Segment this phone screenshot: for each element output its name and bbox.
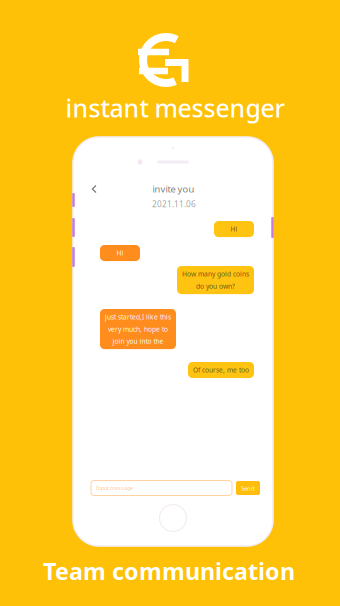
- staticText: 2021.11.06: [152, 198, 196, 210]
- staticText: Team communication: [43, 555, 295, 587]
- staticText: Input message: [96, 484, 133, 492]
- staticText: Hi: [230, 225, 237, 233]
- staticText: do you own?: [196, 282, 235, 291]
- button[interactable]: Send: [236, 481, 260, 495]
- staticText: Hi: [116, 249, 123, 257]
- staticText: just started,I like this: [105, 313, 171, 321]
- staticText: instant messenger: [65, 91, 284, 125]
- staticText: Of course, me too: [193, 366, 249, 374]
- staticText: invite you: [152, 183, 194, 195]
- staticText: very much, hope to: [108, 325, 168, 334]
- staticText: join you into the: [112, 337, 163, 346]
- staticText: How many gold coins: [182, 270, 249, 278]
- button[interactable]: Back: [84, 179, 104, 199]
- staticText: Send: [241, 484, 255, 492]
